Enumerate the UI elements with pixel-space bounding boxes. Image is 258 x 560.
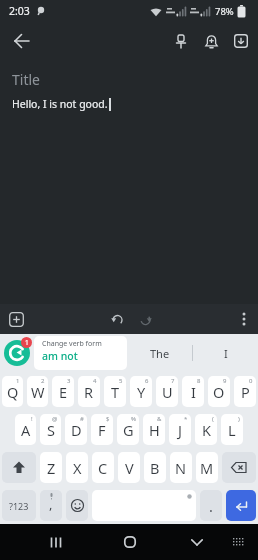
button[interactable]: I bbox=[193, 334, 258, 372]
staticText: U bbox=[162, 382, 173, 402]
button[interactable] bbox=[0, 304, 32, 334]
staticText: 2:03 bbox=[9, 4, 30, 18]
button[interactable]: Q bbox=[2, 376, 23, 407]
button[interactable]: ?123 bbox=[2, 490, 36, 521]
staticText: O bbox=[213, 382, 225, 402]
button[interactable]: V bbox=[118, 452, 140, 483]
button[interactable] bbox=[2, 452, 36, 483]
staticText: L bbox=[228, 420, 236, 440]
staticText: Y bbox=[137, 382, 146, 402]
button[interactable] bbox=[103, 304, 131, 334]
button[interactable] bbox=[166, 22, 196, 60]
button[interactable] bbox=[36, 524, 76, 560]
button[interactable] bbox=[92, 490, 196, 521]
staticText: I bbox=[191, 382, 196, 402]
button[interactable] bbox=[66, 490, 88, 521]
button[interactable]: , bbox=[40, 490, 62, 521]
staticText: W bbox=[31, 382, 45, 402]
staticText: N bbox=[175, 458, 187, 478]
button[interactable] bbox=[131, 304, 159, 334]
button[interactable]: W bbox=[27, 376, 48, 407]
button[interactable]: M bbox=[196, 452, 218, 483]
button[interactable] bbox=[230, 304, 258, 334]
button[interactable]: 1 bbox=[0, 334, 34, 372]
staticText: & bbox=[157, 415, 162, 423]
button[interactable]: The bbox=[127, 334, 192, 372]
staticText: P bbox=[241, 382, 250, 402]
staticText: $ bbox=[106, 415, 110, 423]
button[interactable]: Change verb form bbox=[34, 336, 127, 370]
button[interactable]: . bbox=[200, 490, 222, 521]
button[interactable]: U bbox=[156, 376, 178, 407]
button[interactable]: G bbox=[117, 414, 139, 445]
staticText: 9 bbox=[223, 377, 227, 385]
staticText: The bbox=[150, 346, 170, 361]
button[interactable] bbox=[222, 452, 256, 483]
staticText: ( bbox=[212, 415, 214, 423]
staticText: E bbox=[59, 382, 68, 402]
button[interactable]: E bbox=[52, 376, 74, 407]
button[interactable]: R bbox=[78, 376, 100, 407]
staticText: A bbox=[21, 420, 31, 440]
button[interactable]: K bbox=[195, 414, 217, 445]
button[interactable] bbox=[226, 22, 256, 60]
staticText: ) bbox=[238, 415, 240, 423]
staticText: Hello, I is not good. bbox=[12, 97, 108, 111]
staticText: B bbox=[150, 458, 160, 478]
button[interactable] bbox=[226, 490, 256, 521]
button[interactable]: C bbox=[92, 452, 114, 483]
staticText: Change verb form bbox=[42, 339, 102, 349]
staticText: C bbox=[98, 458, 108, 478]
staticText: K bbox=[202, 420, 211, 440]
button[interactable]: S bbox=[40, 414, 61, 445]
staticText: , bbox=[49, 495, 53, 513]
button[interactable]: Y bbox=[130, 376, 152, 407]
staticText: 0 bbox=[249, 377, 253, 385]
button[interactable] bbox=[196, 22, 226, 60]
staticText: # bbox=[80, 415, 84, 423]
button[interactable]: T bbox=[104, 376, 126, 407]
button[interactable]: B bbox=[144, 452, 166, 483]
button[interactable]: A bbox=[15, 414, 36, 445]
button[interactable]: F bbox=[91, 414, 113, 445]
staticText: 8 bbox=[197, 377, 201, 385]
button[interactable]: I bbox=[182, 376, 204, 407]
staticText: 2 bbox=[41, 377, 45, 385]
button[interactable]: X bbox=[66, 452, 88, 483]
button[interactable]: D bbox=[65, 414, 87, 445]
staticText: % bbox=[131, 415, 136, 423]
staticText: Q bbox=[7, 382, 19, 402]
staticText: Z bbox=[47, 458, 56, 478]
staticText: S bbox=[47, 420, 55, 440]
staticText: X bbox=[73, 458, 82, 478]
staticText: Title bbox=[12, 70, 40, 89]
button[interactable]: J bbox=[169, 414, 191, 445]
button[interactable]: Hello, I is not good. bbox=[0, 89, 258, 111]
button[interactable]: N bbox=[170, 452, 192, 483]
button[interactable]: Z bbox=[40, 452, 62, 483]
button[interactable]: Title bbox=[0, 60, 258, 89]
button[interactable] bbox=[110, 524, 150, 560]
button[interactable]: O bbox=[208, 376, 230, 407]
button[interactable]: H bbox=[143, 414, 165, 445]
staticText: F bbox=[98, 420, 106, 440]
button[interactable] bbox=[177, 524, 217, 560]
button[interactable]: P bbox=[234, 376, 256, 407]
staticText: V bbox=[125, 458, 134, 478]
staticText: 4 bbox=[93, 377, 97, 385]
staticText: I bbox=[224, 346, 228, 361]
staticText: am not bbox=[42, 349, 78, 363]
staticText: 5 bbox=[119, 377, 123, 385]
button[interactable] bbox=[0, 22, 44, 60]
staticText: @ bbox=[52, 415, 58, 423]
staticText: R bbox=[84, 382, 94, 402]
staticText: ?123 bbox=[9, 500, 29, 512]
staticText: 3 bbox=[67, 377, 71, 385]
staticText: D bbox=[71, 420, 82, 440]
staticText: 1 bbox=[25, 338, 29, 347]
staticText: 6 bbox=[145, 377, 149, 385]
staticText: M bbox=[200, 458, 214, 478]
button[interactable] bbox=[225, 524, 251, 560]
button[interactable]: L bbox=[221, 414, 243, 445]
staticText: H bbox=[149, 420, 160, 440]
